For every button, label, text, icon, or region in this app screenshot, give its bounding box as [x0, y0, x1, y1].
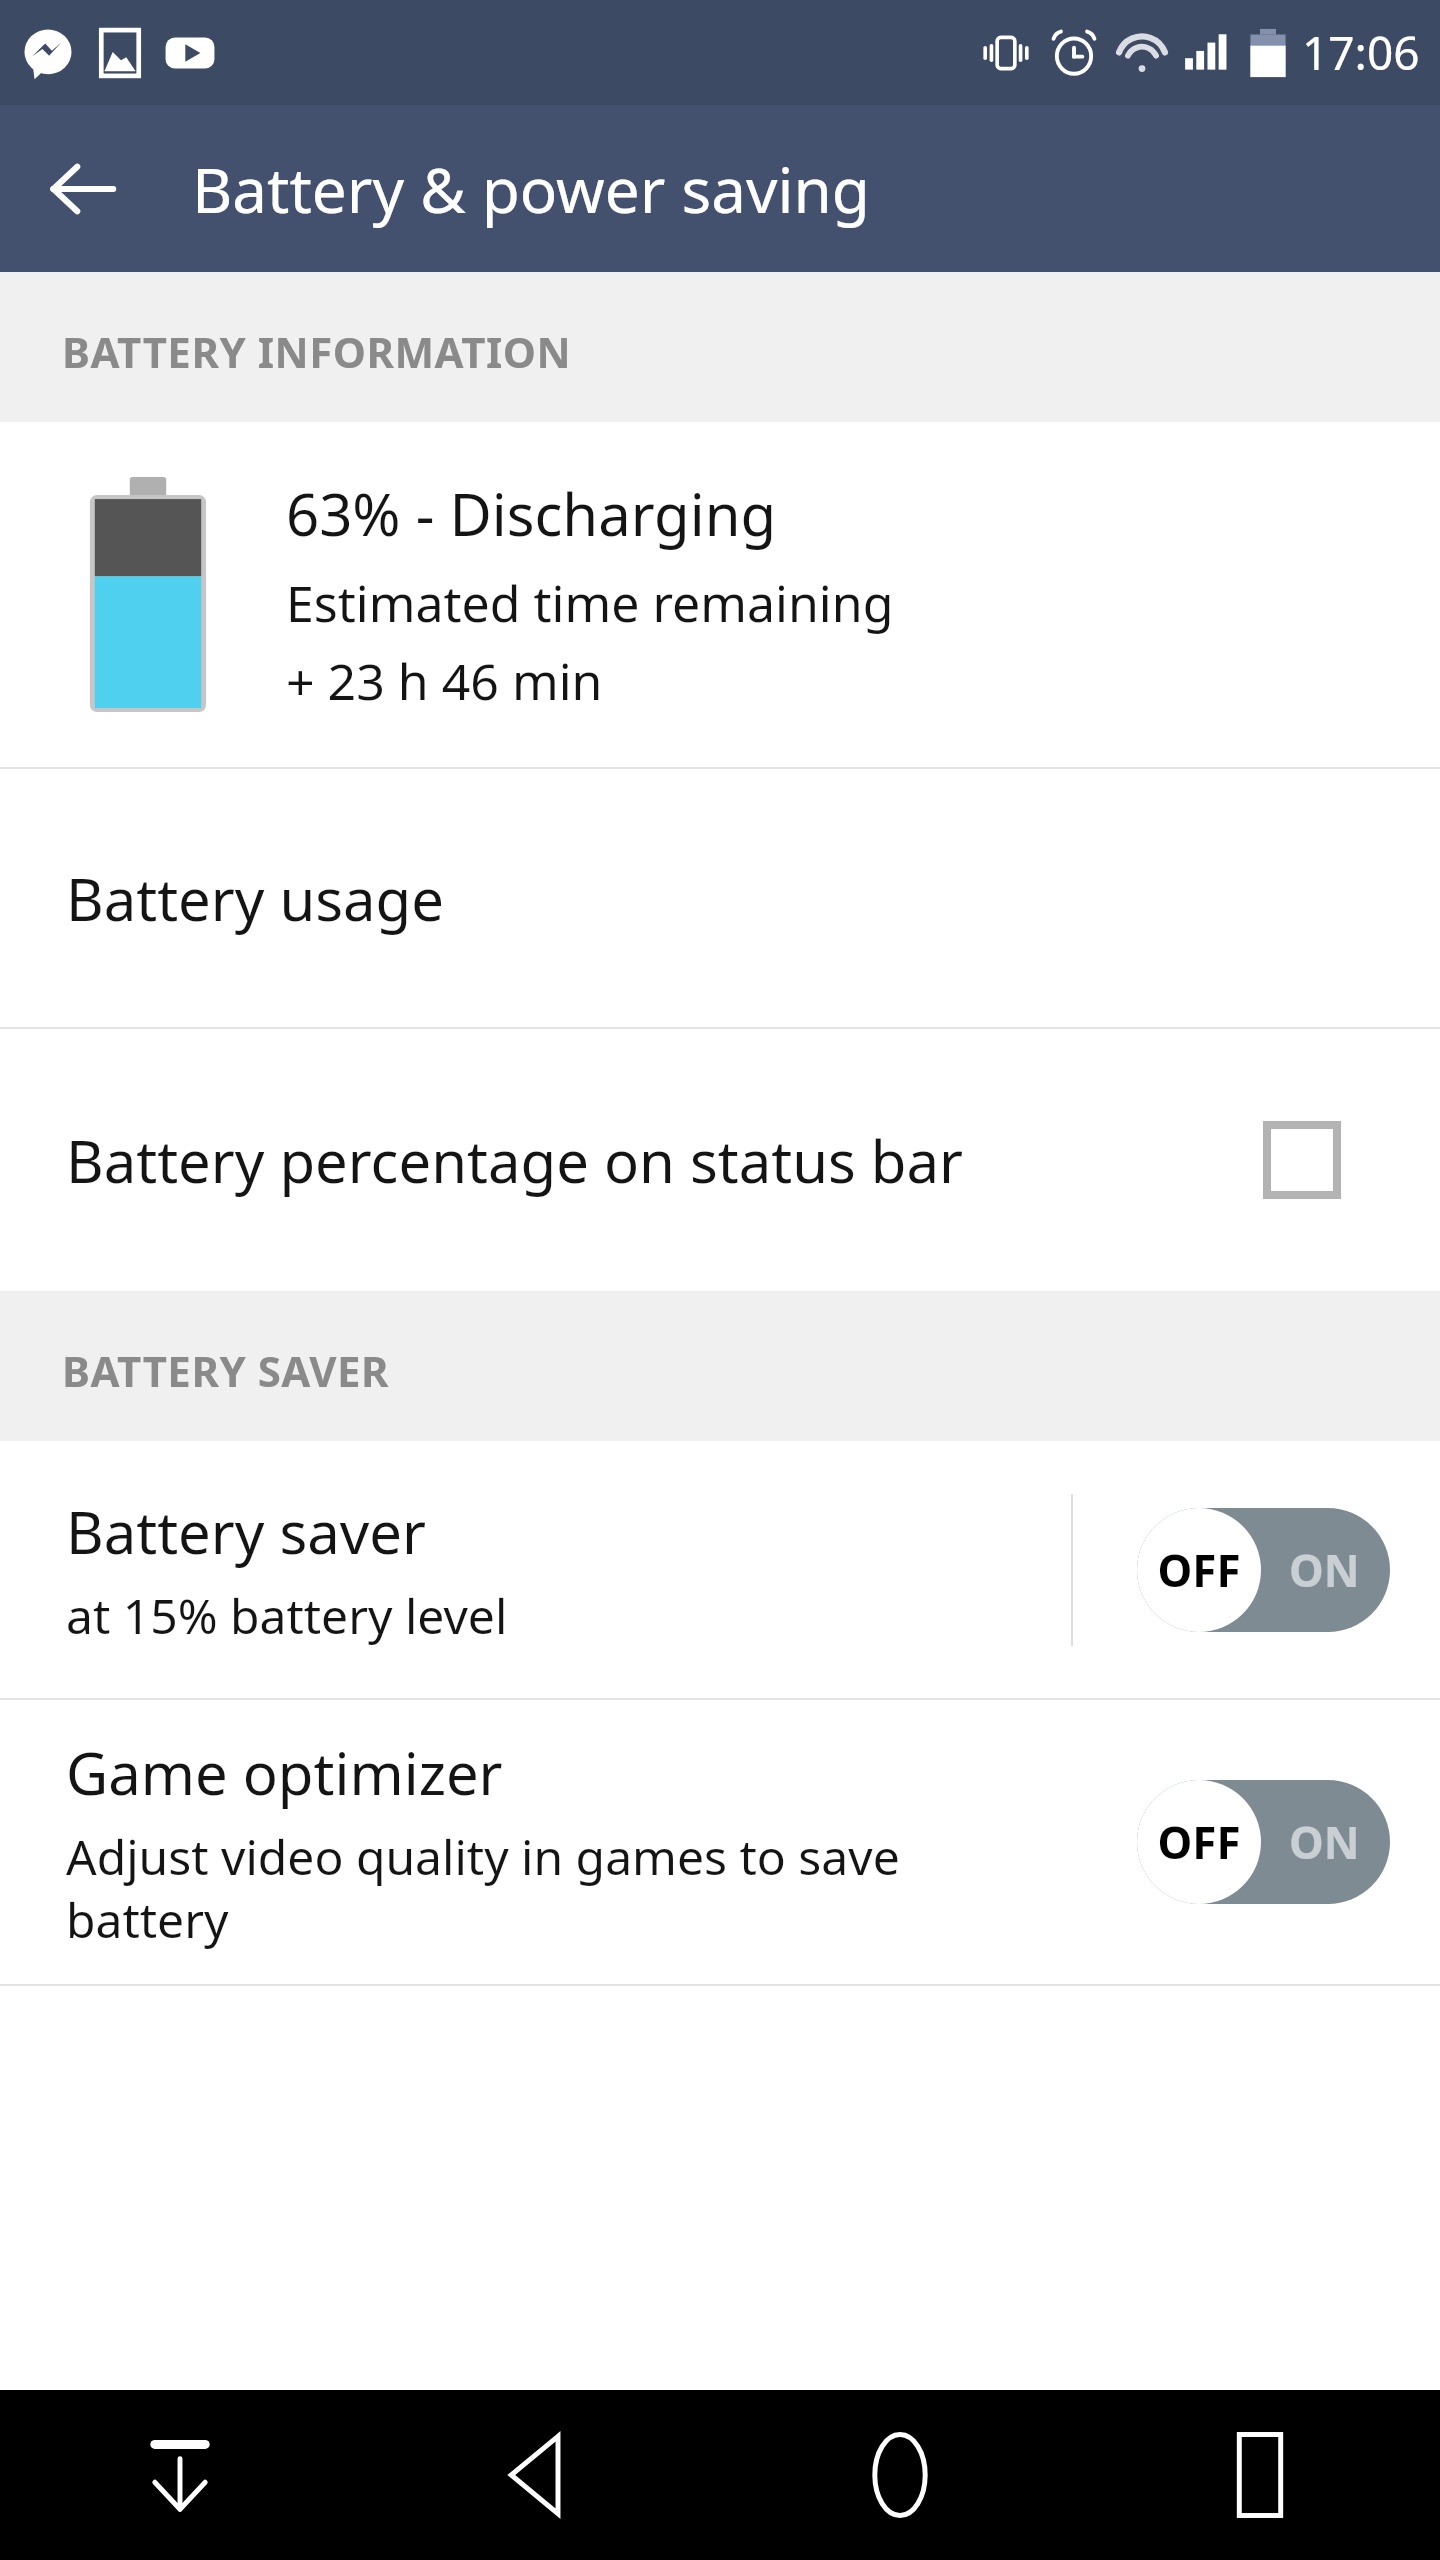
staticText: Game optimizer — [66, 1733, 503, 1812]
button[interactable]: Battery usage — [0, 769, 1440, 1027]
button[interactable]: Game optimizer toggle, off — [1137, 1780, 1390, 1904]
staticText: ON — [1289, 1540, 1360, 1600]
staticText: Battery usage — [66, 859, 444, 938]
staticText: 17:06 — [1302, 21, 1420, 84]
staticText: BATTERY SAVER — [62, 1342, 390, 1399]
staticText: ON — [1289, 1812, 1360, 1872]
staticText: Estimated time remaining — [286, 569, 894, 637]
staticText: BATTERY INFORMATION — [62, 323, 572, 380]
staticText: 63% - Discharging — [286, 474, 777, 553]
staticText: OFF — [1157, 1812, 1241, 1872]
staticText: OFF — [1157, 1540, 1241, 1600]
button[interactable]: Recent apps — [1080, 2390, 1440, 2560]
staticText: Battery percentage on status bar — [66, 1121, 964, 1200]
staticText: Adjust video quality in games to save ba… — [66, 1824, 900, 1952]
staticText: at 15% battery level — [66, 1583, 508, 1648]
button[interactable]: Battery saver — [0, 1441, 1440, 1698]
button[interactable]: Hide keyboard — [0, 2390, 360, 2560]
button[interactable]: Battery percentage on status bar — [0, 1029, 1440, 1291]
button[interactable]: Back — [28, 134, 138, 244]
button[interactable]: Battery saver toggle, off — [1137, 1508, 1390, 1632]
button[interactable]: Home — [720, 2390, 1080, 2560]
button[interactable]: Back — [360, 2390, 720, 2560]
staticText: Battery saver — [66, 1492, 426, 1571]
button[interactable]: 63% - Discharging — [0, 422, 1440, 767]
button[interactable]: Game optimizer — [0, 1700, 1440, 1984]
staticText: Battery & power saving — [192, 147, 870, 231]
staticText: + 23 h 46 min — [286, 647, 603, 715]
